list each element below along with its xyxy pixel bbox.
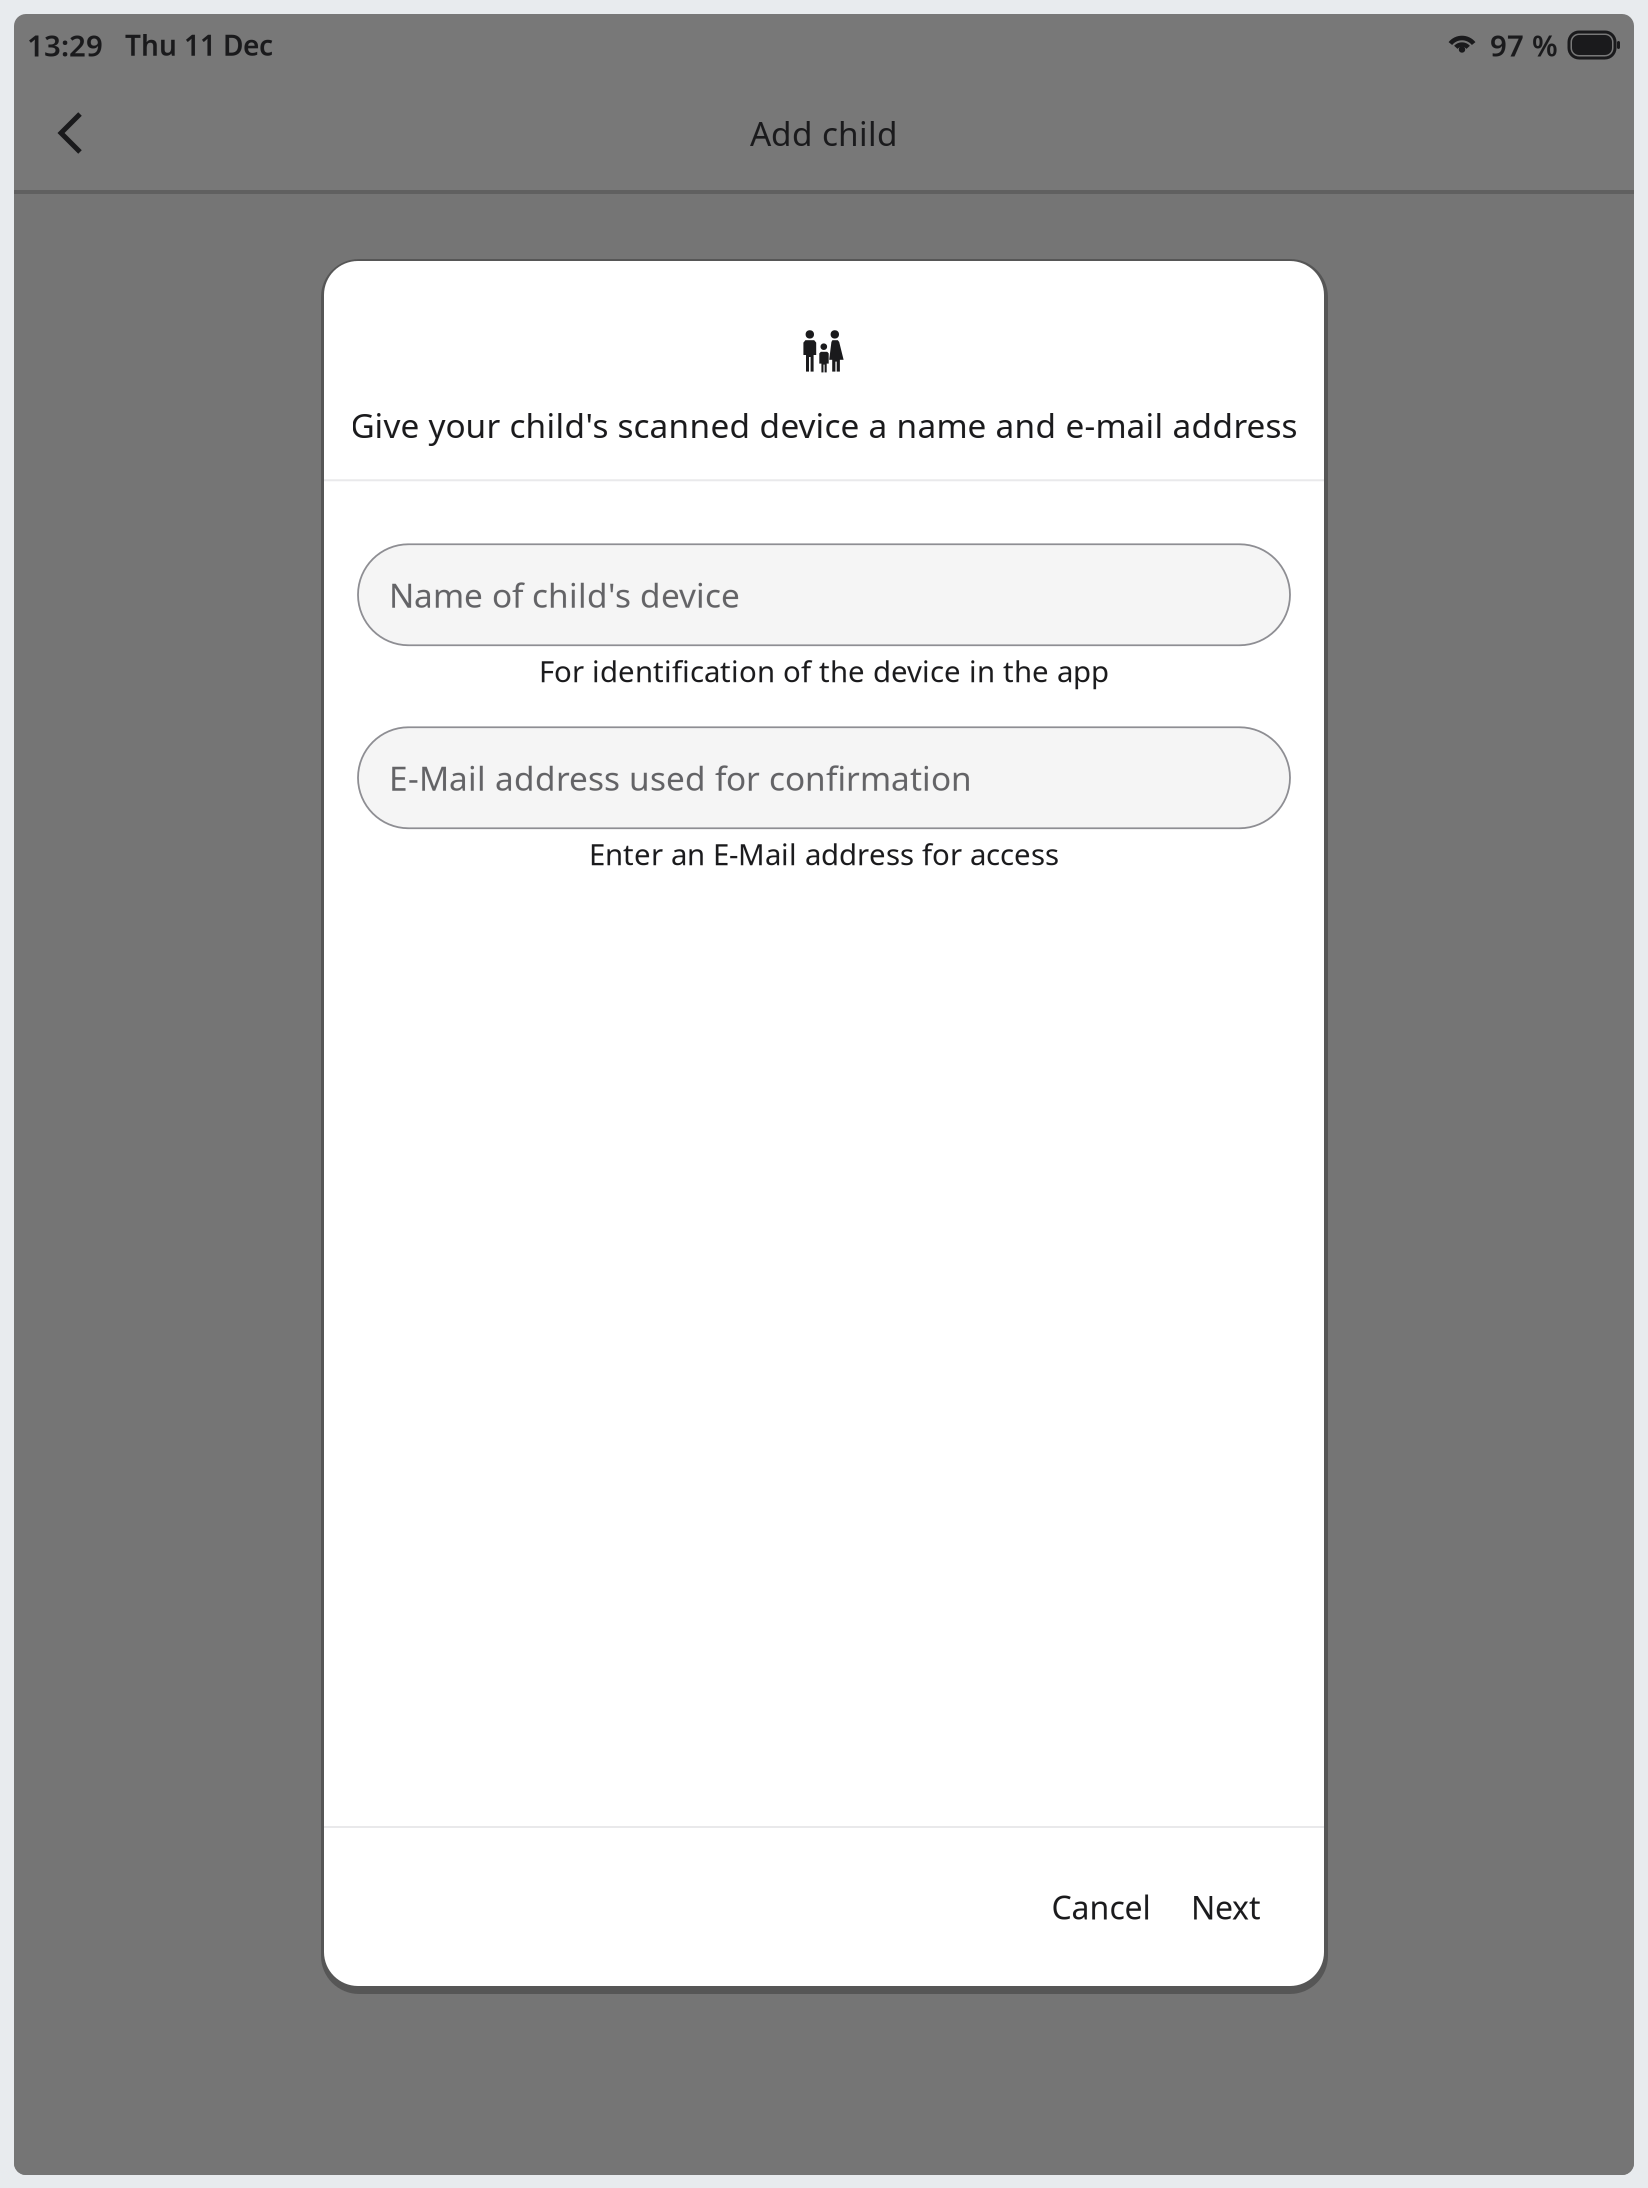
- staticText: 97 %: [1490, 25, 1558, 64]
- staticText: Add child: [750, 111, 898, 155]
- button[interactable]: Next: [1174, 1869, 1278, 1945]
- staticText: For identification of the device in the …: [539, 651, 1109, 690]
- staticText: Cancel: [1051, 1886, 1150, 1928]
- staticText: Thu 11 Dec: [125, 26, 273, 64]
- staticText: 13:29: [27, 25, 103, 64]
- button[interactable]: Name of child's device: [358, 544, 1290, 645]
- staticText: E-Mail address used for confirmation: [389, 756, 972, 800]
- button[interactable]: Back: [14, 76, 127, 190]
- staticText: Give your child's scanned device a name …: [350, 403, 1297, 447]
- staticText: Name of child's device: [389, 573, 740, 617]
- button[interactable]: Cancel: [1028, 1869, 1174, 1945]
- staticText: Next: [1191, 1886, 1261, 1928]
- staticText: Enter an E-Mail address for access: [589, 834, 1059, 873]
- button[interactable]: E-Mail address used for confirmation: [358, 727, 1290, 828]
